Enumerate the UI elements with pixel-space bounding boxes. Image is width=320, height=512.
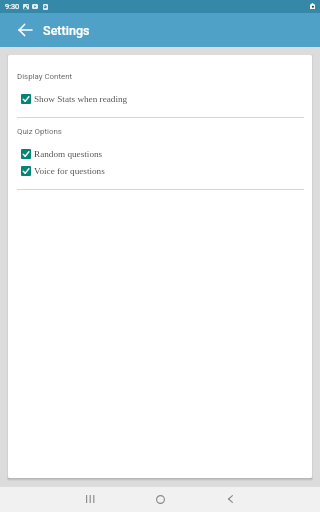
button[interactable]: Voice for questions xyxy=(8,165,312,177)
staticText: Quiz Options xyxy=(17,127,62,136)
button[interactable]: Random questions xyxy=(8,148,312,160)
button[interactable]: Show Stats when reading xyxy=(8,93,312,105)
button[interactable]: Home xyxy=(140,489,180,509)
staticText: Voice for questions xyxy=(34,166,105,176)
staticText: Display Content xyxy=(17,72,73,81)
staticText: Show Stats when reading xyxy=(34,94,128,104)
button[interactable]: Back xyxy=(210,489,250,509)
staticText: Random questions xyxy=(34,149,103,159)
staticText: 9:30 xyxy=(5,2,20,11)
button[interactable]: Recent apps xyxy=(70,489,110,509)
button[interactable]: Back xyxy=(13,18,36,41)
staticText: Settings xyxy=(43,23,90,38)
